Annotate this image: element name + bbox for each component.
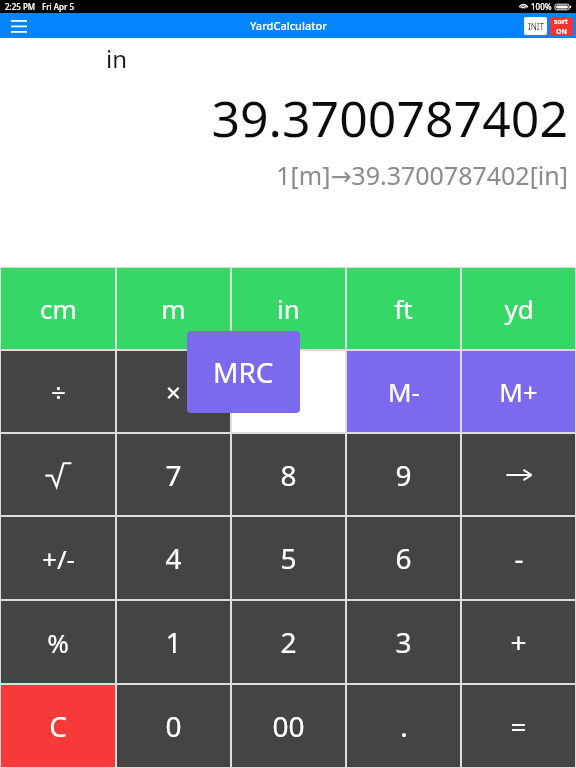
staticText: yd bbox=[504, 291, 534, 326]
staticText: . bbox=[400, 707, 408, 745]
staticText: ÷ bbox=[51, 374, 66, 409]
button[interactable]: - bbox=[462, 517, 575, 599]
button[interactable]: M- bbox=[347, 351, 460, 432]
button[interactable]: +/- bbox=[1, 517, 115, 599]
staticText: 8 bbox=[280, 456, 297, 494]
staticText: ON bbox=[556, 27, 568, 35]
staticText: INIT bbox=[528, 21, 544, 32]
staticText: 9 bbox=[395, 456, 412, 494]
button[interactable]: 00 bbox=[232, 685, 345, 767]
button[interactable]: 3 bbox=[347, 601, 460, 683]
staticText: 5 bbox=[280, 539, 297, 577]
staticText: % bbox=[47, 625, 69, 660]
button[interactable]: yd bbox=[462, 268, 575, 349]
button[interactable]: MRC bbox=[187, 331, 300, 413]
button[interactable]: × bbox=[117, 351, 230, 432]
button[interactable] bbox=[1, 434, 115, 515]
staticText: 00 bbox=[272, 707, 305, 745]
button[interactable]: 5 bbox=[232, 517, 345, 599]
button[interactable]: INIT bbox=[524, 17, 547, 35]
button[interactable]: + bbox=[462, 601, 575, 683]
button[interactable]: 2 bbox=[232, 601, 345, 683]
staticText: m bbox=[161, 291, 186, 326]
button[interactable]: C bbox=[1, 685, 115, 767]
button[interactable]: ft bbox=[347, 268, 460, 349]
staticText: 0 bbox=[165, 707, 182, 745]
staticText: M+ bbox=[499, 374, 538, 409]
staticText: in bbox=[277, 291, 300, 326]
staticText: +/- bbox=[42, 541, 75, 576]
staticText: cm bbox=[40, 291, 77, 326]
staticText: 1[m]→39.3700787402[in] bbox=[276, 158, 568, 192]
button[interactable]: m bbox=[117, 268, 230, 349]
button[interactable]: sort bbox=[550, 17, 573, 35]
button[interactable]: % bbox=[1, 601, 115, 683]
staticText: ft bbox=[394, 291, 413, 326]
staticText: 3 bbox=[395, 623, 412, 661]
staticText: + bbox=[510, 623, 527, 661]
button[interactable]: = bbox=[462, 685, 575, 767]
staticText: MRC bbox=[213, 353, 274, 391]
staticText: C bbox=[49, 707, 67, 745]
staticText: 1 bbox=[165, 623, 182, 661]
button[interactable]: . bbox=[347, 685, 460, 767]
staticText: 4 bbox=[165, 539, 182, 577]
button[interactable]: 8 bbox=[232, 434, 345, 515]
staticText: × bbox=[166, 374, 181, 409]
staticText: - bbox=[514, 539, 524, 577]
staticText: in bbox=[106, 42, 128, 75]
button[interactable]: 6 bbox=[347, 517, 460, 599]
button[interactable]: 7 bbox=[117, 434, 230, 515]
staticText: 2:25 PM bbox=[5, 1, 36, 12]
button[interactable]: cm bbox=[1, 268, 115, 349]
button[interactable]: 9 bbox=[347, 434, 460, 515]
staticText: sort bbox=[554, 17, 569, 27]
staticText: 7 bbox=[165, 456, 182, 494]
button[interactable]: M+ bbox=[462, 351, 575, 432]
button[interactable]: in bbox=[232, 268, 345, 349]
button[interactable]: 4 bbox=[117, 517, 230, 599]
staticText: M- bbox=[388, 374, 420, 409]
staticText: 100% bbox=[531, 1, 552, 12]
staticText: 6 bbox=[395, 539, 412, 577]
staticText: 39.3700787402 bbox=[211, 84, 568, 152]
staticText: YardCalculator bbox=[250, 18, 327, 33]
button[interactable]: Menu bbox=[4, 13, 34, 38]
button[interactable]: Backspace bbox=[462, 434, 575, 515]
staticText: Fri Apr 5 bbox=[42, 1, 75, 12]
button[interactable] bbox=[232, 351, 345, 432]
button[interactable]: ÷ bbox=[1, 351, 115, 432]
button[interactable]: 1 bbox=[117, 601, 230, 683]
button[interactable]: 0 bbox=[117, 685, 230, 767]
staticText: = bbox=[510, 707, 527, 745]
staticText: 2 bbox=[280, 623, 297, 661]
